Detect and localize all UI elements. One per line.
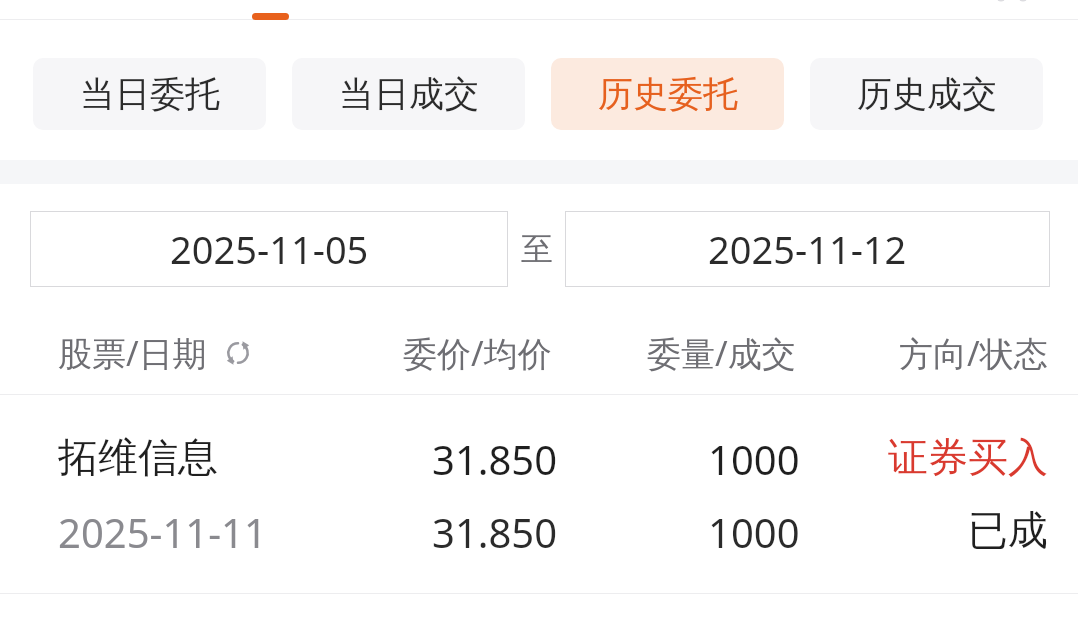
button[interactable]: 历史成交 (810, 58, 1043, 130)
staticText: 委价/均价 (403, 330, 552, 376)
staticText: 股票/日期 (58, 330, 207, 376)
staticText: 方向/状态 (899, 330, 1048, 376)
staticText: 至 (521, 229, 553, 269)
staticText: 1000 (708, 432, 800, 486)
button[interactable]: 拓维信息 (0, 395, 1078, 593)
button[interactable]: 当日委托 (33, 58, 266, 130)
button[interactable]: 2025-11-12 (565, 211, 1050, 287)
button[interactable]: 历史委托 (551, 58, 784, 130)
button[interactable]: 当日成交 (292, 58, 525, 130)
staticText: 已成 (968, 505, 1048, 555)
staticText: 2025-11-05 (170, 223, 369, 275)
staticText: 1000 (708, 505, 800, 559)
staticText: 拓维信息 (58, 432, 218, 482)
staticText: 31.850 (432, 505, 558, 559)
staticText: 证券买入 (888, 432, 1048, 482)
staticText: 31.850 (432, 432, 558, 486)
staticText: 2025-11-11 (58, 505, 267, 559)
staticText: 历史成交 (857, 72, 997, 116)
staticText: 2025-11-12 (708, 223, 907, 275)
staticText: 当日成交 (339, 72, 479, 116)
staticText: 委量/成交 (647, 330, 796, 376)
button[interactable]: Refresh (221, 336, 255, 370)
button[interactable]: 2025-11-05 (30, 211, 508, 287)
staticText: 当日委托 (80, 72, 220, 116)
staticText: 历史委托 (598, 72, 738, 116)
